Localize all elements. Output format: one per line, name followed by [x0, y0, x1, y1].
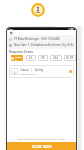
- staticText: BOOK NOW: [32, 144, 52, 149]
- staticText: Response Zones: [9, 50, 33, 54]
- staticText: Classic | Spring: [20, 68, 44, 72]
- staticText: Total Selected : Electric light 0973 7 h…: [7, 137, 76, 140]
- button[interactable]: Classic | Spring: [9, 65, 74, 78]
- staticText: 66: [29, 56, 33, 60]
- button[interactable]: Back: [9, 31, 13, 35]
- button[interactable]: 66: [26, 55, 36, 61]
- button[interactable]: BOOK NOW: [7, 142, 76, 150]
- button[interactable]: 88: [38, 55, 48, 61]
- staticText: 9:41: [9, 28, 13, 30]
- staticText: SELECT: [15, 55, 23, 61]
- staticText: Near Gate 7, Vishwakarma Electronic City…: [14, 43, 74, 47]
- staticText: PF Rahul Bhatnagar - Shift 10:30 AM: [14, 37, 60, 41]
- staticText: 88: [41, 56, 45, 60]
- staticText: HLPR: [66, 56, 74, 60]
- staticText: seat available - 4: [20, 73, 38, 76]
- button[interactable]: SELECT: [11, 55, 23, 61]
- staticText: 444: [53, 56, 59, 60]
- button[interactable]: PF Rahul Bhatnagar - Shift 10:30 AM: [9, 36, 74, 42]
- button[interactable]: Near Gate 7, Vishwakarma Electronic City…: [9, 42, 74, 48]
- button[interactable]: HLPR: [64, 55, 76, 61]
- button[interactable]: 444: [50, 55, 62, 61]
